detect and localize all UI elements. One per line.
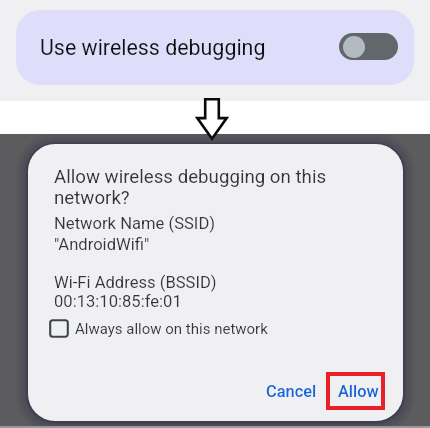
staticText: Cancel bbox=[266, 382, 317, 401]
staticText: Wi-Fi Address (BSSID) bbox=[54, 273, 217, 292]
staticText: 00:13:10:85:fe:01 bbox=[54, 292, 182, 311]
button[interactable]: Always allow on this network bbox=[49, 319, 268, 338]
button[interactable]: Cancel bbox=[261, 372, 321, 410]
staticText: Always allow on this network bbox=[75, 320, 268, 338]
staticText: network? bbox=[54, 187, 130, 209]
staticText: Use wireless debugging bbox=[40, 35, 266, 60]
staticText: "AndroidWifi" bbox=[54, 235, 150, 254]
button[interactable]: Use wireless debugging bbox=[16, 10, 414, 85]
other: Tap arrow bbox=[196, 98, 228, 140]
button[interactable]: Allow bbox=[329, 373, 387, 410]
staticText: Allow bbox=[338, 382, 379, 401]
staticText: Allow wireless debugging on this bbox=[54, 166, 327, 188]
button[interactable]: Wireless debugging toggle, off bbox=[339, 33, 398, 60]
staticText: Network Name (SSID) bbox=[54, 214, 216, 233]
